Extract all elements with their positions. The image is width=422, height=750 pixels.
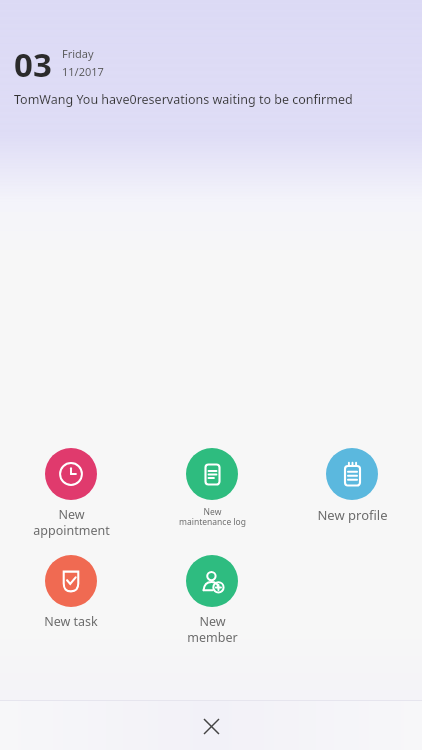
button[interactable]: Close (189, 704, 233, 748)
button[interactable]: New profile (292, 446, 412, 526)
button[interactable]: New member (152, 553, 272, 648)
staticText: New maintenance log (179, 506, 246, 528)
button[interactable]: New task (11, 553, 131, 632)
button[interactable]: New maintenance log (152, 446, 272, 530)
staticText: 11/2017 (62, 64, 104, 79)
staticText: New task (44, 613, 98, 630)
staticText: New profile (317, 506, 388, 524)
staticText: 03 (14, 42, 52, 87)
staticText: TomWang You have0reservations waiting to… (14, 91, 353, 108)
staticText: New appointment (33, 506, 110, 539)
button[interactable]: New appointment (11, 446, 131, 541)
staticText: Friday (62, 46, 94, 61)
staticText: New member (187, 613, 238, 646)
